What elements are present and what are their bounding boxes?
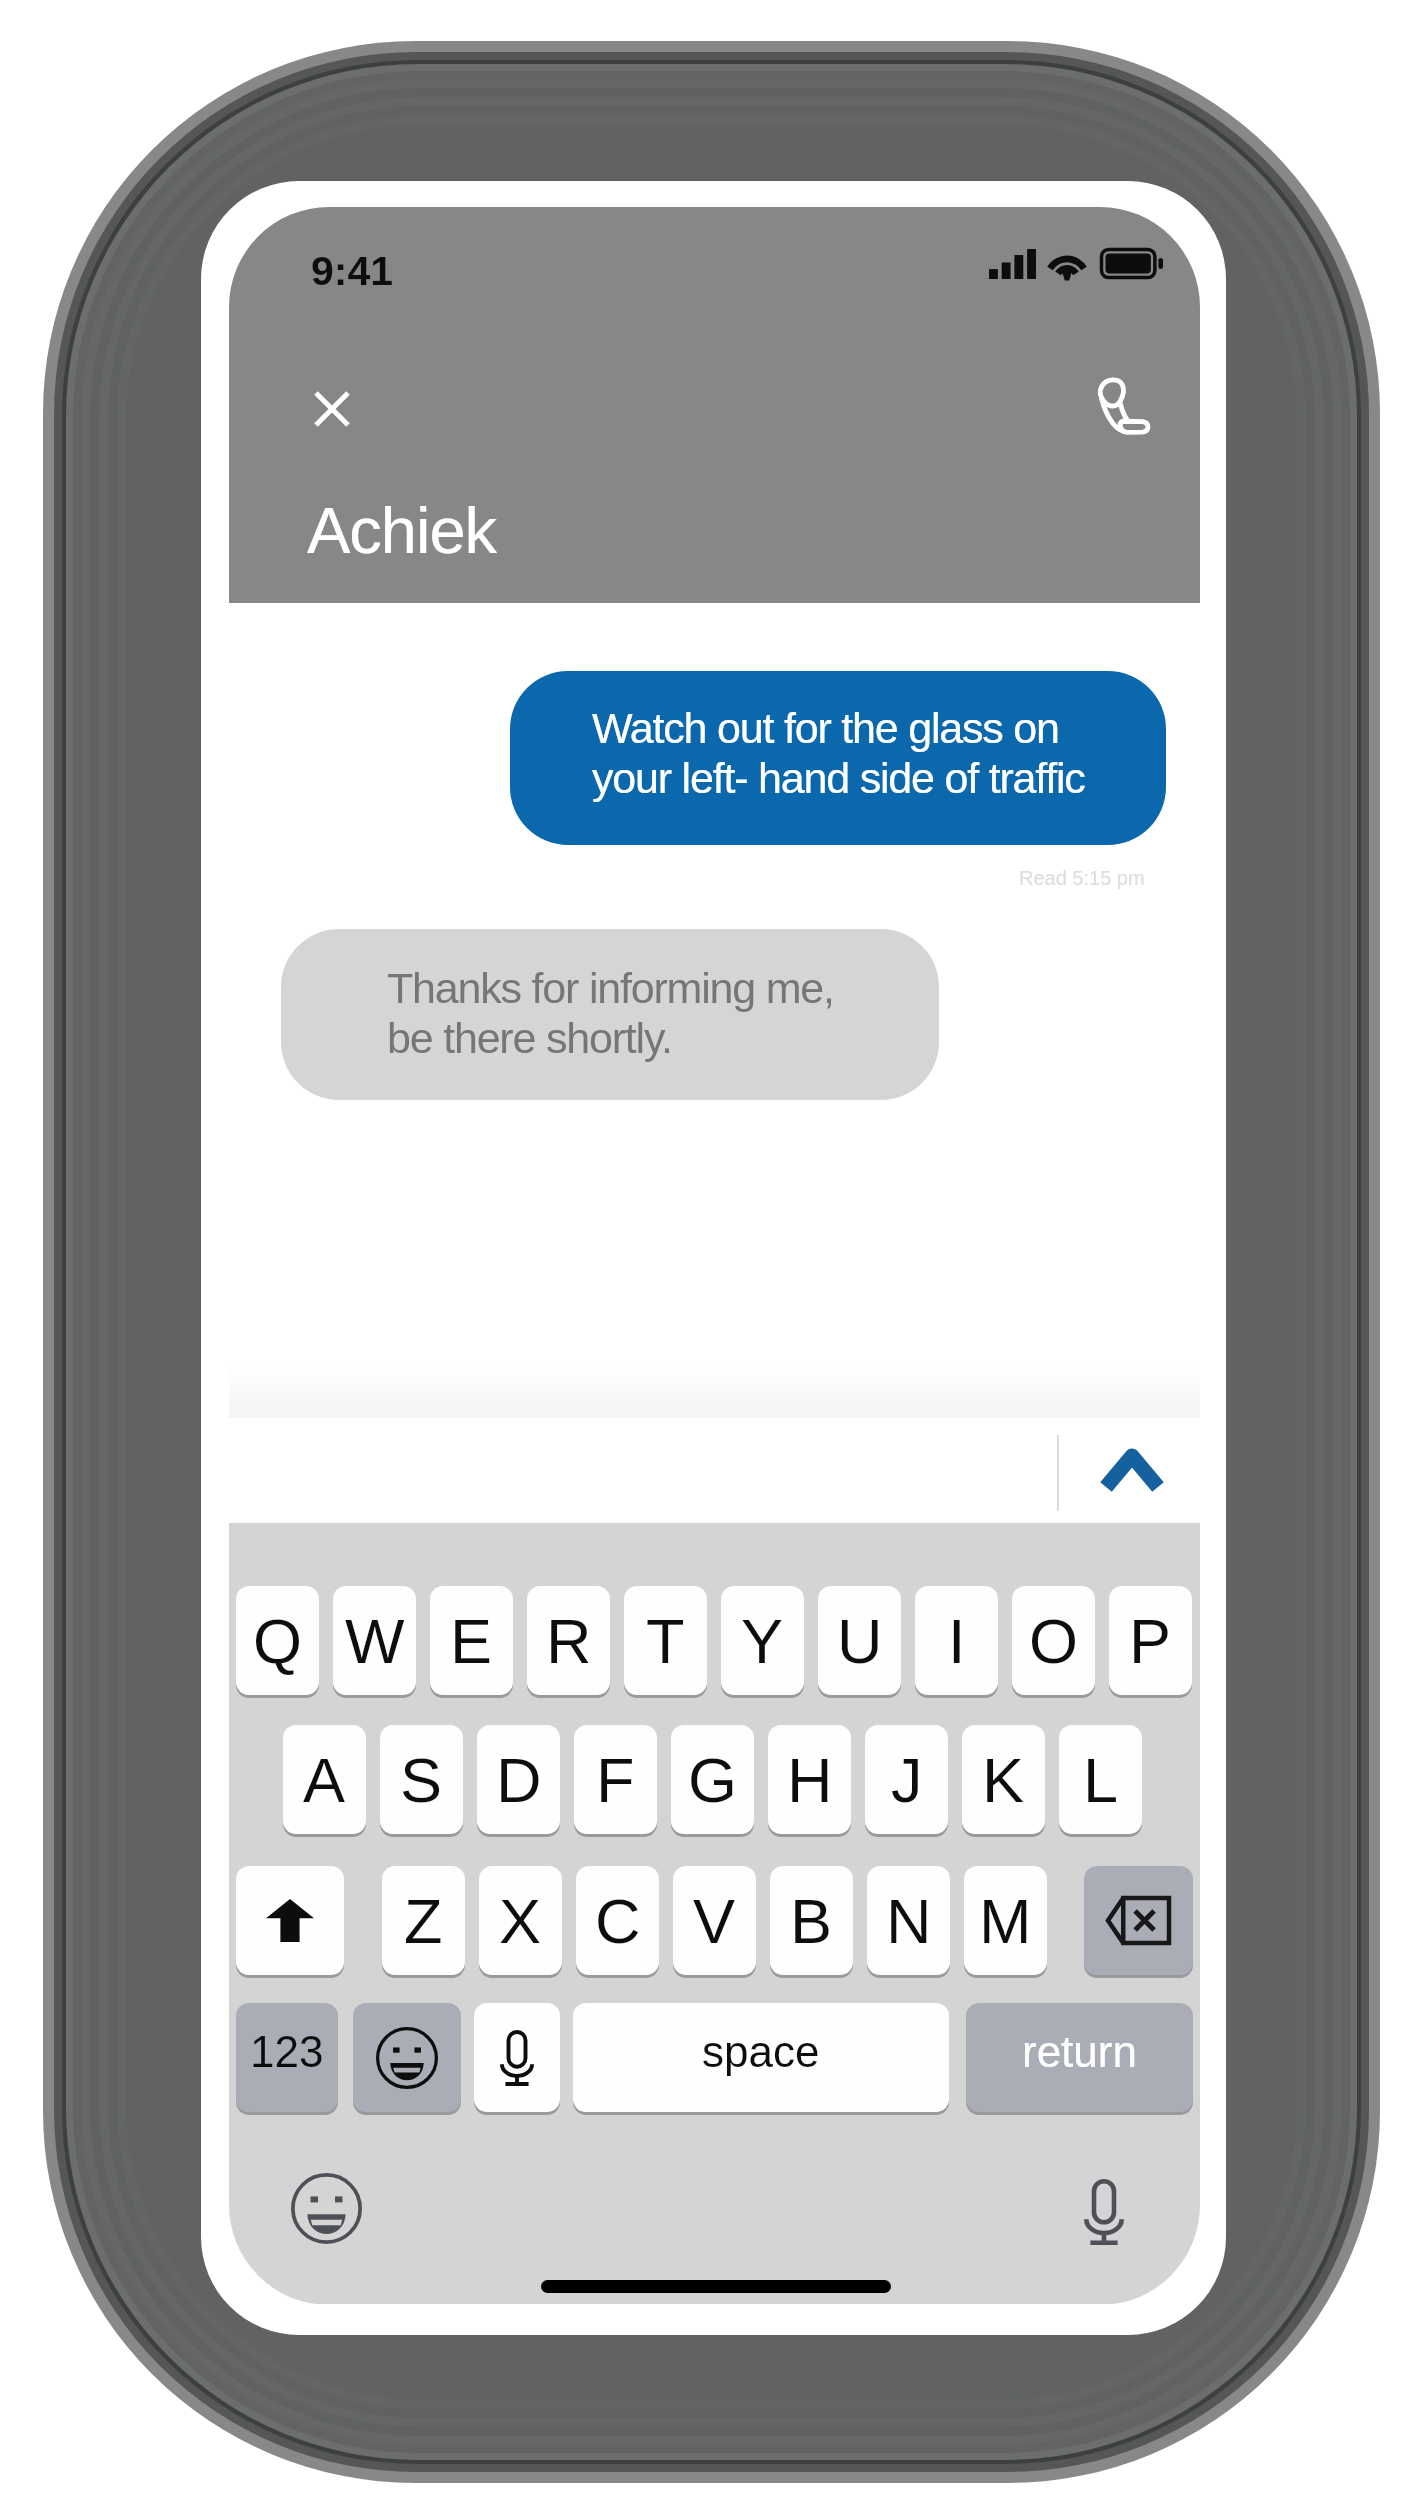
staticText: H bbox=[787, 1745, 833, 1815]
staticText: G bbox=[688, 1745, 738, 1815]
staticText: P bbox=[1129, 1606, 1172, 1676]
staticText: return bbox=[1022, 2027, 1137, 2076]
staticText: N bbox=[886, 1886, 932, 1956]
staticText: 123 bbox=[250, 2027, 324, 2076]
staticText: U bbox=[837, 1606, 883, 1676]
staticText: A bbox=[303, 1745, 346, 1815]
button[interactable]: Y bbox=[721, 1586, 804, 1695]
staticText: Y bbox=[741, 1606, 784, 1676]
staticText: R bbox=[546, 1606, 592, 1676]
button[interactable]: Voice input bbox=[1057, 2165, 1150, 2258]
button[interactable]: C bbox=[576, 1866, 659, 1975]
button[interactable]: X bbox=[479, 1866, 562, 1975]
staticText: O bbox=[1029, 1606, 1079, 1676]
staticText: M bbox=[979, 1886, 1032, 1956]
staticText: C bbox=[595, 1886, 641, 1956]
staticText: Watch out for the glass on your left- ha… bbox=[592, 704, 1085, 802]
button[interactable]: Emoji keyboard bbox=[353, 2003, 461, 2112]
staticText: T bbox=[646, 1606, 685, 1676]
button[interactable]: Close bbox=[293, 370, 371, 448]
staticText: I bbox=[948, 1606, 966, 1676]
button[interactable]: V bbox=[673, 1866, 756, 1975]
button[interactable]: Emoji bbox=[280, 2162, 373, 2255]
staticText: J bbox=[891, 1745, 923, 1815]
staticText: Z bbox=[404, 1886, 443, 1956]
button[interactable]: P bbox=[1109, 1586, 1192, 1695]
staticText: L bbox=[1083, 1745, 1119, 1815]
staticText: Read 5:15 pm bbox=[1019, 867, 1145, 889]
button[interactable]: D bbox=[477, 1725, 560, 1834]
button[interactable]: Expand bbox=[1086, 1429, 1178, 1515]
staticText: B bbox=[790, 1886, 833, 1956]
button[interactable]: U bbox=[818, 1586, 901, 1695]
staticText: S bbox=[400, 1745, 443, 1815]
staticText: Thanks for informing me, be there shortl… bbox=[387, 964, 834, 1062]
button[interactable]: R bbox=[527, 1586, 610, 1695]
button[interactable]: J bbox=[865, 1725, 948, 1834]
staticText: 9:41 bbox=[311, 248, 394, 294]
button[interactable]: B bbox=[770, 1866, 853, 1975]
button[interactable]: Shift bbox=[236, 1866, 344, 1975]
button[interactable]: T bbox=[624, 1586, 707, 1695]
button[interactable]: E bbox=[430, 1586, 513, 1695]
button[interactable]: G bbox=[671, 1725, 754, 1834]
button[interactable]: Backspace bbox=[1084, 1866, 1193, 1975]
staticText: F bbox=[596, 1745, 635, 1815]
button[interactable]: I bbox=[915, 1586, 998, 1695]
staticText: Achiek bbox=[307, 494, 497, 567]
button[interactable]: Q bbox=[236, 1586, 319, 1695]
button[interactable]: Numbers bbox=[236, 2003, 338, 2112]
button[interactable]: N bbox=[867, 1866, 950, 1975]
staticText: E bbox=[450, 1606, 493, 1676]
staticText: space bbox=[702, 2027, 820, 2076]
button[interactable]: return bbox=[966, 2003, 1193, 2112]
button[interactable]: A bbox=[283, 1725, 366, 1834]
button[interactable]: M bbox=[964, 1866, 1047, 1975]
staticText: Q bbox=[253, 1606, 303, 1676]
staticText: W bbox=[345, 1606, 405, 1676]
staticText: K bbox=[982, 1745, 1025, 1815]
button[interactable]: space bbox=[573, 2003, 949, 2112]
button[interactable]: W bbox=[333, 1586, 416, 1695]
button[interactable]: Thanks for informing me, be there shortl… bbox=[281, 929, 939, 1100]
button[interactable]: Call bbox=[1082, 366, 1162, 446]
button[interactable]: O bbox=[1012, 1586, 1095, 1695]
button[interactable]: Watch out for the glass on your left- ha… bbox=[510, 671, 1166, 845]
staticText: X bbox=[499, 1886, 542, 1956]
button[interactable]: Dictate bbox=[474, 2003, 560, 2112]
staticText: V bbox=[693, 1886, 736, 1956]
button[interactable]: H bbox=[768, 1725, 851, 1834]
button[interactable]: Z bbox=[382, 1866, 465, 1975]
button[interactable]: F bbox=[574, 1725, 657, 1834]
button[interactable]: K bbox=[962, 1725, 1045, 1834]
button[interactable]: S bbox=[380, 1725, 463, 1834]
staticText: D bbox=[496, 1745, 542, 1815]
button[interactable]: L bbox=[1059, 1725, 1142, 1834]
